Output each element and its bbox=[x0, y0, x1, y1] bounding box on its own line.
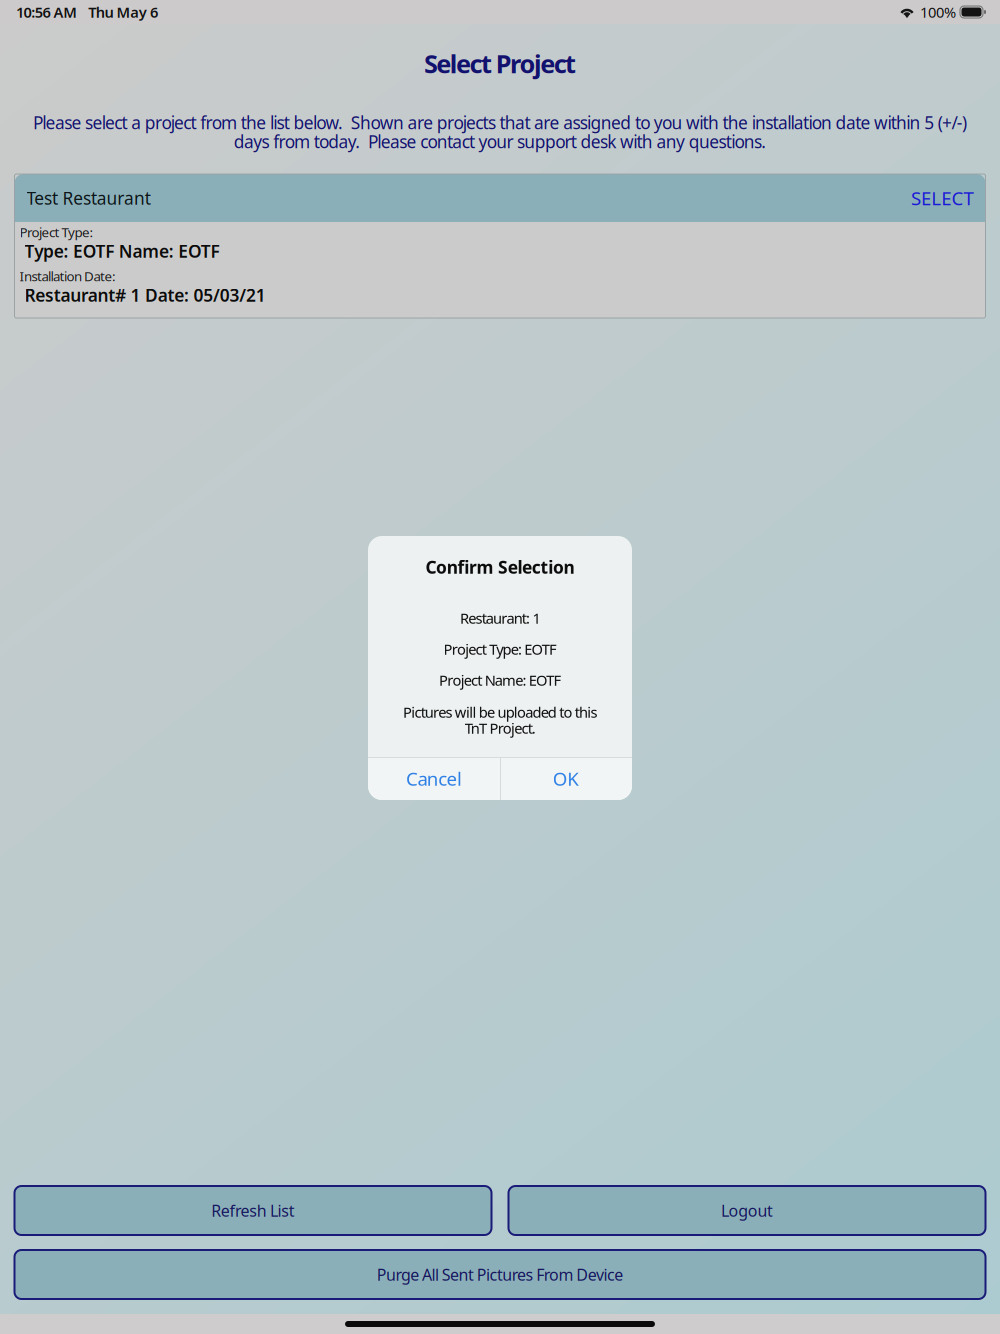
staticText: Project Type: EOTF bbox=[443, 639, 557, 659]
button[interactable]: Purge All Sent Pictures From Device bbox=[14, 1250, 985, 1299]
staticText: Project Type: bbox=[19, 223, 93, 241]
staticText: Project Name: EOTF bbox=[439, 670, 561, 690]
staticText: Confirm Selection bbox=[425, 555, 575, 578]
staticText: Refresh List bbox=[211, 1200, 295, 1221]
staticText: TnT Project. bbox=[464, 718, 536, 738]
staticText: SELECT bbox=[911, 186, 973, 210]
staticText: OK bbox=[553, 766, 579, 791]
button[interactable]: Refresh List bbox=[14, 1186, 491, 1235]
staticText: Restaurant: 1 bbox=[460, 608, 540, 628]
staticText: days from today. Please contact your sup… bbox=[234, 130, 766, 153]
staticText: Please select a project from the list be… bbox=[33, 111, 967, 134]
staticText: Purge All Sent Pictures From Device bbox=[377, 1264, 623, 1285]
staticText: Type: EOTF Name: EOTF bbox=[24, 239, 219, 262]
button[interactable]: Logout bbox=[508, 1186, 985, 1235]
button[interactable]: OK bbox=[500, 757, 632, 800]
button[interactable]: Cancel bbox=[368, 757, 500, 800]
button[interactable]: SELECT bbox=[905, 174, 973, 222]
staticText: Thu May 6 bbox=[88, 2, 158, 22]
staticText: Installation Date: bbox=[19, 267, 116, 285]
staticText: Cancel bbox=[406, 766, 462, 791]
staticText: 10:56 AM bbox=[16, 2, 77, 22]
staticText: Select Project bbox=[424, 47, 576, 80]
staticText: Restaurant# 1 Date: 05/03/21 bbox=[24, 283, 266, 306]
staticText: 100% bbox=[920, 2, 956, 22]
staticText: Test Restaurant bbox=[26, 186, 151, 209]
staticText: Pictures will be uploaded to this bbox=[403, 702, 597, 722]
staticText: Logout bbox=[721, 1200, 773, 1221]
